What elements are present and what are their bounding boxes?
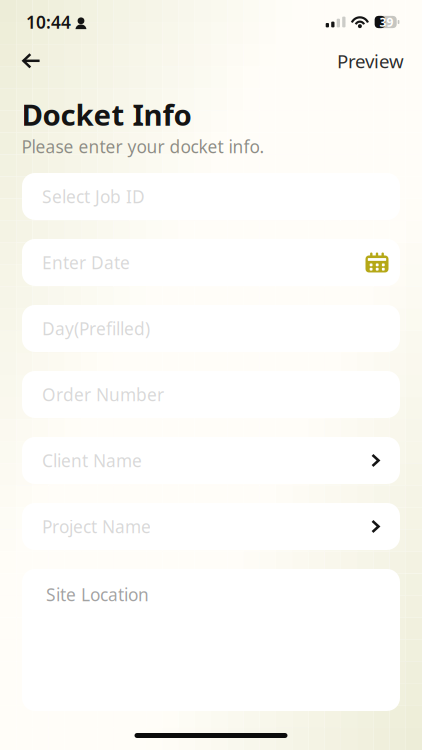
staticText: Day(Prefilled) <box>42 317 150 340</box>
staticText: Site Location <box>46 583 149 606</box>
button[interactable]: Order Number <box>22 371 400 418</box>
button[interactable]: Day(Prefilled) <box>22 305 400 352</box>
button[interactable]: Preview <box>328 44 404 78</box>
staticText: 39 <box>379 14 393 30</box>
staticText: Please enter your docket info. <box>21 135 264 158</box>
staticText: Project Name <box>42 515 151 538</box>
staticText: Client Name <box>42 449 142 472</box>
staticText: Preview <box>337 49 404 73</box>
staticText: Docket Info <box>21 95 191 134</box>
button[interactable]: Site Location <box>22 569 400 711</box>
staticText: Enter Date <box>42 251 130 274</box>
button[interactable]: Project Name <box>22 503 400 550</box>
button[interactable]: Select Job ID <box>22 173 400 220</box>
button[interactable]: Client Name <box>22 437 400 484</box>
button[interactable]: Enter Date <box>22 239 400 286</box>
staticText: Select Job ID <box>42 185 145 208</box>
button[interactable]: Back <box>11 44 51 78</box>
staticText: 10:44 <box>26 10 71 33</box>
staticText: Order Number <box>42 383 164 406</box>
